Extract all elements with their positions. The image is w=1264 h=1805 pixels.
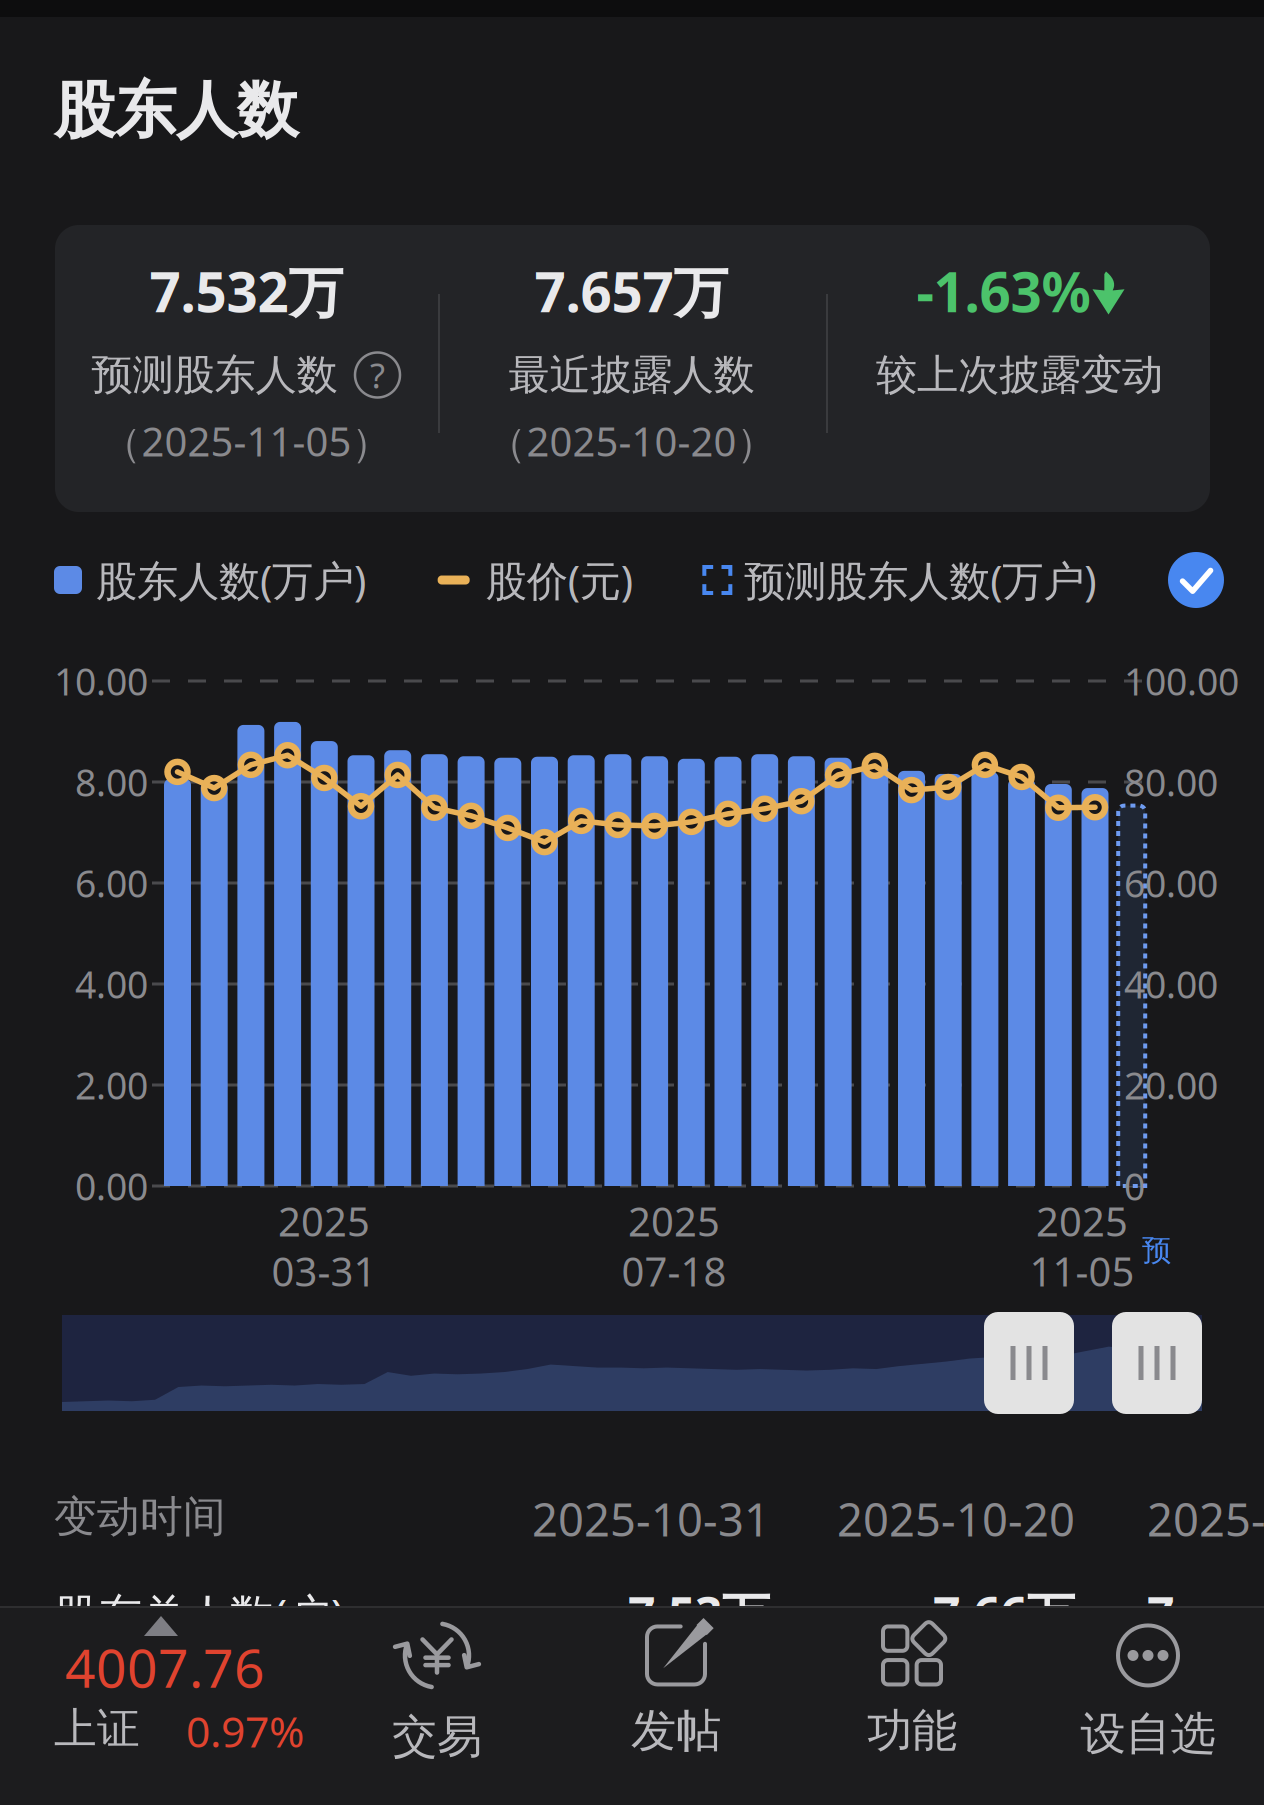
staticText: 7.53万 [628,1581,770,1646]
staticText: 2.00 [75,1060,148,1110]
staticText: 0.00 [75,1161,148,1211]
staticText: 股东人数 [54,72,298,149]
staticText: 40.00 [1124,959,1218,1009]
staticText: 60.00 [1124,858,1218,908]
button[interactable]: 设自选 [1048,1618,1248,1768]
staticText: 2025 [628,1194,720,1248]
staticText: 功能 [867,1702,957,1759]
staticText: 预测股东人数(万户) [744,552,1096,608]
staticText: 20.00 [1124,1060,1218,1110]
button[interactable]: Shanghai Composite index 4007.76 up 0.97… [0,1612,330,1772]
staticText: 设自选 [1080,1705,1215,1762]
staticText: 最近披露人数 [508,349,754,401]
button[interactable]: Range start handle [984,1312,1074,1414]
staticText: 8.00 [75,757,148,807]
staticText: 100.00 [1124,656,1239,706]
staticText: 80.00 [1124,757,1218,807]
staticText: 交易 [392,1708,482,1765]
staticText: 上证 [54,1702,140,1756]
staticText: 0.97% [186,1702,304,1760]
staticText: -1.63% [916,254,1090,328]
staticText: 2025-10-31 [532,1488,770,1550]
staticText: （2025-11-05） [101,414,391,468]
staticText: ? [370,351,385,399]
staticText: 4007.76 [65,1631,265,1703]
staticText: （2025-10-20） [486,414,776,468]
staticText: 预测股东人数 [91,349,337,401]
button[interactable]: Toggle forecast series [1168,552,1224,608]
staticText: 股东人数(万户) [96,552,366,608]
staticText: 2025 [278,1194,370,1248]
staticText: 股价(元) [486,552,633,608]
staticText: 03-31 [271,1244,376,1298]
staticText: 股东总人数(户) [54,1584,344,1644]
button[interactable]: 发帖 [576,1618,776,1768]
staticText: 0 [1124,1161,1145,1211]
staticText: 11-05 [1029,1244,1134,1298]
staticText: 6.00 [75,858,148,908]
staticText: 7.66万 [933,1581,1075,1646]
staticText: 07-18 [621,1244,726,1298]
staticText: 变动时间 [54,1490,226,1544]
staticText: 4.00 [75,959,148,1009]
staticText: 10.00 [54,656,148,706]
staticText: 较上次披露变动 [876,349,1163,401]
staticText: 预 [1142,1232,1171,1269]
staticText: 2025-1 [1147,1488,1264,1550]
staticText: 7. [1147,1581,1187,1646]
button[interactable]: 功能 [812,1618,1012,1768]
button[interactable]: 交易 [337,1618,537,1768]
staticText: 2025 [1036,1194,1128,1248]
staticText: 2025-10-20 [837,1488,1075,1550]
staticText: 发帖 [631,1702,721,1759]
button[interactable]: Range end handle [1112,1312,1202,1414]
staticText: 7.657万 [534,254,728,328]
staticText: 7.532万 [149,254,343,328]
